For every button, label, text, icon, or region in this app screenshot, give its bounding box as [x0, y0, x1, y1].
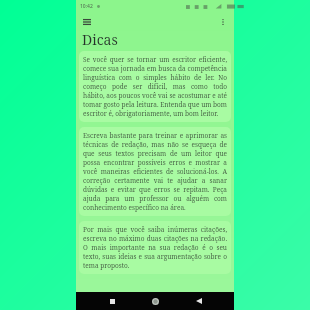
button[interactable]: Home [147, 293, 163, 309]
button[interactable]: Open navigation menu [80, 15, 94, 29]
staticText: Se você quer se tornar um escritor efici… [83, 55, 227, 118]
button[interactable]: Back [191, 293, 207, 309]
button[interactable]: Por mais que você saiba inúmeras citaçõe… [79, 221, 231, 274]
staticText: Escreva bastante para treinar e aprimora… [83, 131, 227, 212]
button[interactable]: More options [216, 15, 230, 29]
staticText: 10:42 [80, 3, 93, 10]
staticText: Dicas [82, 30, 118, 48]
button[interactable]: Recent apps [104, 293, 120, 309]
button[interactable]: Escreva bastante para treinar e aprimora… [79, 127, 231, 216]
button[interactable]: Se você quer se tornar um escritor efici… [79, 51, 231, 122]
staticText: Por mais que você saiba inúmeras citaçõe… [83, 225, 227, 270]
